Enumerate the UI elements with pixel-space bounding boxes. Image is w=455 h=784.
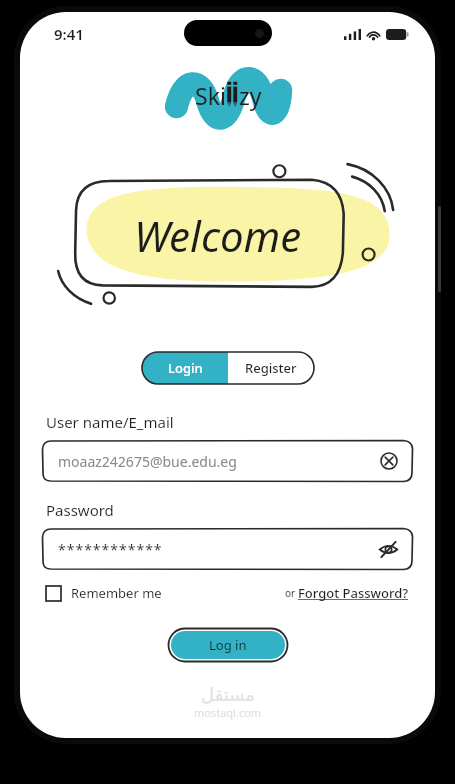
staticText: Login (168, 359, 203, 377)
staticText: ************ (58, 540, 163, 559)
staticText: Welcome (134, 207, 302, 264)
staticText: 9:41 (54, 24, 84, 44)
staticText: مستقل (201, 684, 255, 705)
staticText: Register (245, 359, 297, 377)
button[interactable]: moaaz242675@bue.edu.eg (42, 440, 413, 482)
button[interactable]: Register (228, 352, 314, 384)
staticText: mostaql.com (194, 705, 262, 720)
staticText: moaaz242675@bue.edu.eg (58, 452, 237, 471)
staticText: Log in (209, 636, 247, 654)
staticText: or (285, 586, 298, 600)
button[interactable]: Remember me (46, 584, 162, 602)
button[interactable]: ************ (42, 528, 413, 570)
staticText: Forgot Password? (298, 584, 409, 602)
button[interactable]: Log in (170, 630, 286, 660)
button[interactable]: Show password (375, 536, 401, 562)
staticText: zy (239, 80, 262, 111)
button[interactable]: Clear text (377, 449, 401, 473)
button[interactable]: Forgot Password? (298, 584, 409, 602)
staticText: User name/E_mail (46, 412, 174, 432)
staticText: Remember me (71, 584, 162, 602)
staticText: Ski (195, 80, 226, 111)
button[interactable]: Login (142, 352, 228, 384)
staticText: Password (46, 500, 114, 520)
